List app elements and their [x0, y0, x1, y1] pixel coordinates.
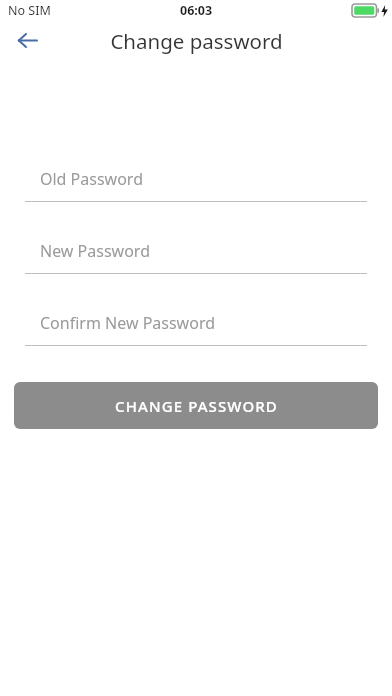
- staticText: Old Password: [40, 168, 143, 190]
- staticText: CHANGE PASSWORD: [115, 396, 278, 416]
- button[interactable]: Back: [7, 25, 47, 55]
- staticText: Change password: [110, 27, 283, 55]
- button[interactable]: Old Password: [0, 168, 392, 202]
- button[interactable]: New Password: [0, 240, 392, 274]
- button[interactable]: CHANGE PASSWORD: [14, 382, 378, 429]
- staticText: Confirm New Password: [40, 312, 216, 334]
- button[interactable]: Confirm New Password: [0, 312, 392, 346]
- staticText: New Password: [40, 240, 150, 262]
- staticText: 06:03: [180, 2, 213, 19]
- staticText: No SIM: [8, 2, 51, 19]
